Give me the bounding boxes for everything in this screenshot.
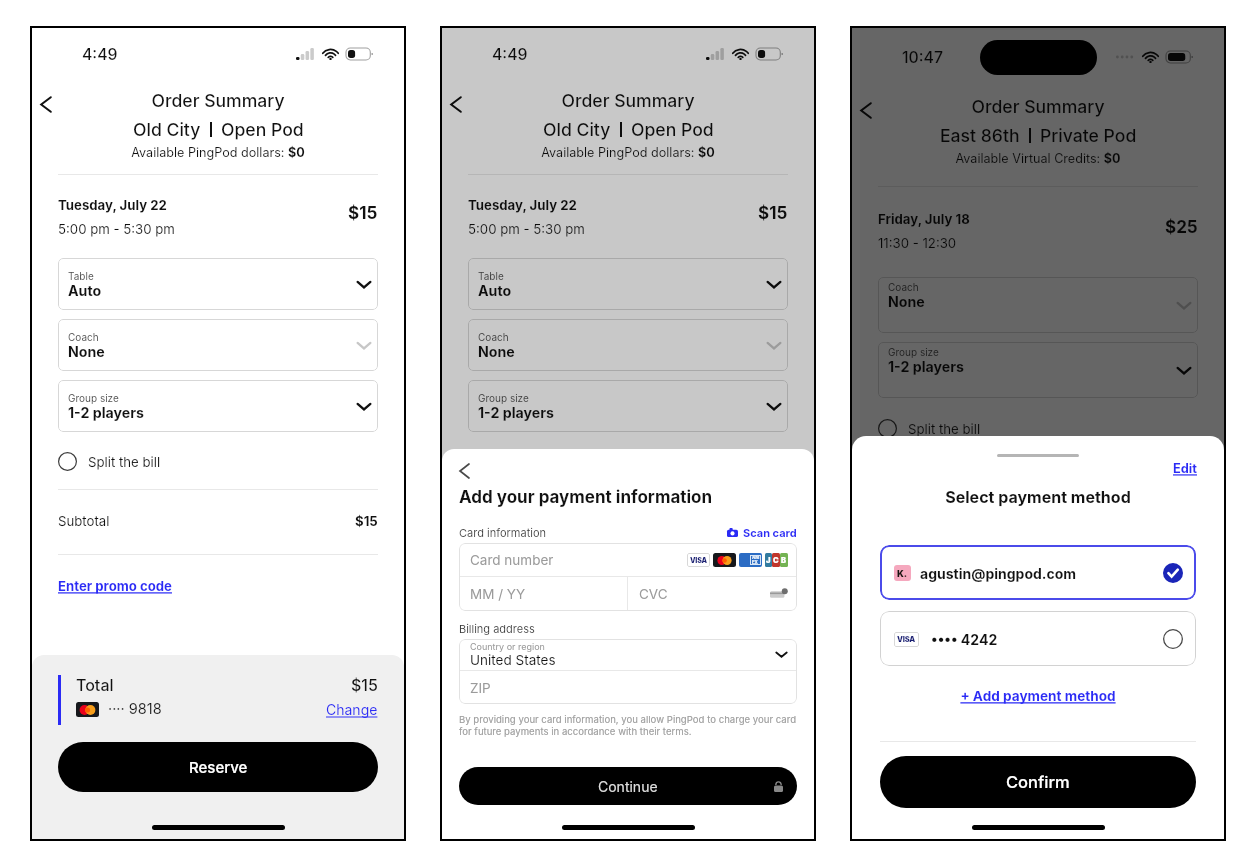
button[interactable]: Group size xyxy=(58,380,378,432)
button[interactable]: Back xyxy=(459,461,479,481)
staticText: Continue xyxy=(598,778,658,795)
staticText: Coach xyxy=(888,281,919,293)
staticText: None xyxy=(68,343,105,360)
staticText: ···· 9818 xyxy=(108,700,162,718)
staticText: Reserve xyxy=(189,758,248,776)
staticText: 1-2 players xyxy=(478,404,554,421)
staticText: Table xyxy=(478,270,504,282)
button[interactable]: Reserve xyxy=(58,742,378,792)
staticText: AM EX xyxy=(752,555,760,565)
button[interactable]: Split the bill xyxy=(878,419,981,438)
staticText: Subtotal xyxy=(58,513,110,529)
staticText: $15 xyxy=(348,203,378,224)
button[interactable]: Continue xyxy=(459,767,797,805)
staticText: By providing your card information, you … xyxy=(459,714,797,738)
staticText: agustin@pingpod.com xyxy=(920,565,1077,582)
staticText: B xyxy=(781,556,787,565)
staticText: Billing address xyxy=(459,622,535,635)
button[interactable]: Coach xyxy=(468,319,788,371)
staticText: 10:47 xyxy=(902,48,943,67)
staticText: J xyxy=(766,556,771,565)
staticText: Tuesday, July 22 xyxy=(58,197,167,213)
button[interactable]: VISA xyxy=(880,611,1196,666)
staticText: East 86th xyxy=(940,125,1020,146)
staticText: Auto xyxy=(68,282,102,299)
staticText: 1-2 players xyxy=(68,404,144,421)
button[interactable]: Table xyxy=(468,258,788,310)
staticText: Add your payment information xyxy=(459,487,713,508)
staticText: Old City xyxy=(133,119,201,140)
staticText: •••• 4242 xyxy=(931,631,998,648)
staticText: Open Pod xyxy=(631,119,714,140)
staticText: $15 xyxy=(351,675,378,694)
staticText: $15 xyxy=(355,513,378,529)
staticText: 4:49 xyxy=(492,45,528,64)
staticText: Tuesday, July 22 xyxy=(468,197,577,213)
staticText: Table xyxy=(68,270,94,282)
staticText: Auto xyxy=(478,282,512,299)
staticText: Select payment method xyxy=(852,487,1224,506)
staticText: VISA xyxy=(690,556,707,564)
button[interactable]: + Add payment method xyxy=(880,688,1196,704)
staticText: Coach xyxy=(478,331,509,343)
staticText: Order Summary xyxy=(561,90,695,111)
staticText: Order Summary xyxy=(151,90,285,111)
button[interactable]: Group size xyxy=(468,380,788,432)
button[interactable]: Back xyxy=(853,97,879,123)
staticText: C xyxy=(773,556,779,565)
button[interactable]: Split the bill xyxy=(58,452,161,471)
staticText: 11:30 - 12:30 xyxy=(878,235,957,251)
staticText: Private Pod xyxy=(1040,125,1137,146)
staticText: United States xyxy=(470,652,556,668)
staticText: Open Pod xyxy=(221,119,304,140)
staticText: Country or region xyxy=(470,641,545,652)
staticText: Group size xyxy=(888,346,939,358)
button[interactable]: Edit xyxy=(1173,461,1197,476)
button[interactable]: Table xyxy=(58,258,378,310)
button[interactable]: Coach xyxy=(878,277,1198,333)
staticText: CVC xyxy=(639,586,668,602)
staticText: Total xyxy=(76,675,114,694)
staticText: None xyxy=(888,293,925,310)
staticText: Old City xyxy=(543,119,611,140)
staticText: 1-2 players xyxy=(888,358,964,375)
staticText: $15 xyxy=(758,203,788,224)
button[interactable]: Change xyxy=(326,701,378,718)
staticText: VISA xyxy=(897,635,916,644)
button[interactable]: Split the bill xyxy=(468,452,571,471)
staticText: 5:00 pm - 5:30 pm xyxy=(58,221,175,237)
staticText: Group size xyxy=(68,392,119,404)
staticText: Coach xyxy=(68,331,99,343)
button[interactable]: Enter promo code xyxy=(58,578,172,594)
staticText: Scan card xyxy=(743,526,797,539)
button[interactable]: Coach xyxy=(58,319,378,371)
staticText: Card number xyxy=(470,552,554,568)
staticText: Available PingPod dollars: $0 xyxy=(541,145,715,160)
staticText: ZIP xyxy=(470,680,491,696)
staticText: Available PingPod dollars: $0 xyxy=(131,145,305,160)
staticText: Split the bill xyxy=(88,454,161,470)
staticText: 4:49 xyxy=(82,45,118,64)
button[interactable]: Confirm xyxy=(880,756,1196,808)
staticText: Available Virtual Credits: $0 xyxy=(955,151,1121,166)
button[interactable]: K. xyxy=(880,545,1196,600)
staticText: MM / YY xyxy=(470,586,526,602)
staticText: Friday, July 18 xyxy=(878,211,970,227)
button[interactable]: Back xyxy=(443,91,469,117)
staticText: Group size xyxy=(478,392,529,404)
staticText: 5:00 pm - 5:30 pm xyxy=(468,221,585,237)
staticText: None xyxy=(478,343,515,360)
staticText: Card information xyxy=(459,526,546,539)
button[interactable]: Scan card xyxy=(727,526,797,539)
button[interactable]: Group size xyxy=(878,342,1198,398)
staticText: Split the bill xyxy=(908,421,981,437)
staticText: Order Summary xyxy=(971,96,1105,117)
staticText: Confirm xyxy=(1006,772,1070,792)
staticText: $25 xyxy=(1165,217,1198,238)
button[interactable]: Back xyxy=(33,91,59,117)
staticText: K. xyxy=(897,568,908,579)
